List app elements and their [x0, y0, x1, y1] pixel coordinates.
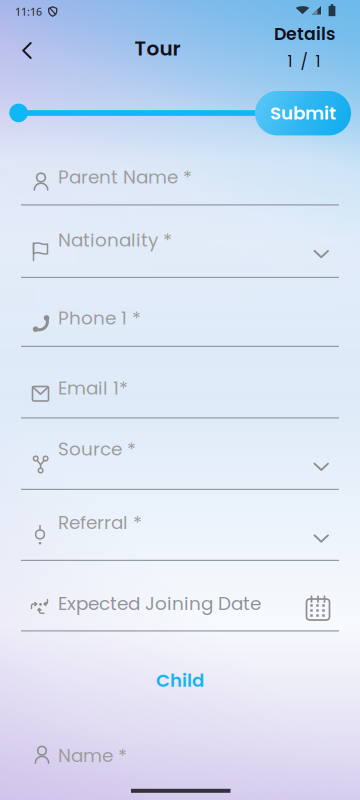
staticText: Parent Name *	[58, 164, 192, 190]
staticText: Referral *	[58, 510, 142, 535]
staticText: Expected Joining Date	[58, 591, 261, 616]
button[interactable]: Name *	[20, 720, 340, 791]
button[interactable]: Submit	[255, 91, 351, 135]
staticText: Child	[156, 668, 204, 693]
staticText: 11:16	[15, 4, 42, 19]
staticText: 1 / 1	[287, 51, 320, 72]
button[interactable]: Referral *	[20, 490, 340, 561]
staticText: Email 1*	[58, 375, 128, 401]
staticText: Submit	[270, 100, 336, 126]
staticText: Name *	[58, 743, 127, 768]
button[interactable]: Parent Name *	[20, 134, 340, 205]
button[interactable]: Expected Joining Date	[20, 561, 340, 631]
staticText: Tour	[134, 34, 180, 62]
button[interactable]: Back	[11, 34, 43, 66]
staticText: Nationality *	[58, 227, 172, 253]
staticText: Phone 1 *	[58, 305, 141, 331]
button[interactable]: Source *	[20, 418, 340, 490]
staticText: Source *	[58, 436, 136, 462]
button[interactable]: Nationality *	[20, 205, 340, 278]
button[interactable]: Email 1*	[20, 347, 340, 418]
button[interactable]: Phone 1 *	[20, 278, 340, 347]
staticText: Details	[274, 22, 335, 46]
